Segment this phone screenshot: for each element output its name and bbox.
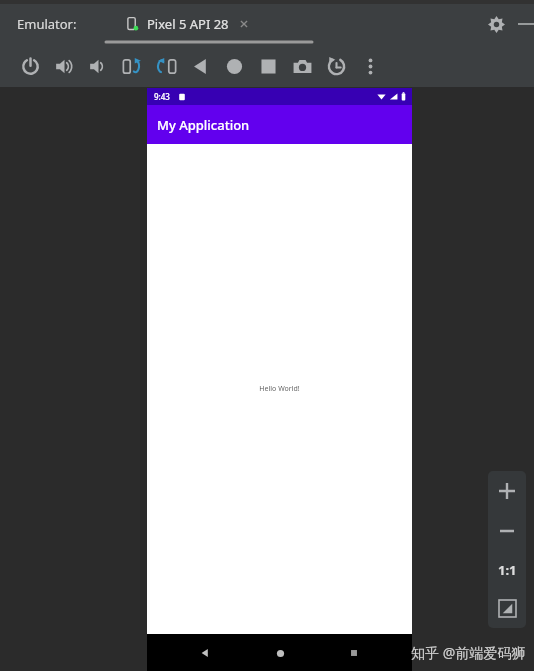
button[interactable]: Home	[217, 49, 251, 83]
staticText: 9:43	[154, 91, 170, 102]
staticText: Emulator:	[17, 15, 77, 33]
staticText: 1:1	[498, 561, 517, 579]
button[interactable]: Rotate left	[115, 49, 149, 83]
button[interactable]: Pixel 5 API 28	[125, 15, 251, 33]
button[interactable]: Back	[188, 636, 222, 670]
button[interactable]: Volume down	[81, 49, 115, 83]
button[interactable]: Fit to screen	[488, 589, 526, 628]
button[interactable]: Home	[263, 636, 297, 670]
button[interactable]: 1:1	[488, 550, 526, 589]
button[interactable]: Close tab	[237, 17, 251, 31]
button[interactable]: History	[319, 49, 353, 83]
button[interactable]: Back	[183, 49, 217, 83]
button[interactable]: Settings	[484, 12, 508, 36]
button[interactable]: More	[353, 49, 387, 83]
button[interactable]: Screenshot	[285, 49, 319, 83]
button[interactable]: Minimize	[518, 16, 534, 32]
button[interactable]: Zoom in	[488, 471, 526, 511]
staticText: My Application	[157, 116, 250, 134]
button[interactable]: Zoom out	[488, 511, 526, 550]
button[interactable]: Rotate right	[149, 49, 183, 83]
button[interactable]: Volume up	[47, 49, 81, 83]
staticText: Hello World!	[259, 384, 300, 394]
staticText: Pixel 5 API 28	[147, 15, 229, 33]
button[interactable]: Power	[13, 49, 47, 83]
staticText: 知乎 @前端爱码狮	[411, 643, 526, 662]
button[interactable]: Recents	[337, 636, 371, 670]
button[interactable]: Overview	[251, 49, 285, 83]
